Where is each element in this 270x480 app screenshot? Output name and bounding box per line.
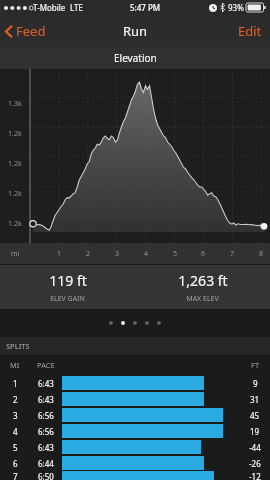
- staticText: 5:47 PM: [130, 2, 161, 13]
- button[interactable]: Edit: [230, 15, 270, 47]
- staticText: 45: [250, 410, 260, 421]
- button[interactable]: 6: [0, 455, 270, 471]
- staticText: 6:43: [38, 378, 54, 389]
- staticText: 5: [13, 442, 18, 453]
- button[interactable]: 2: [0, 391, 270, 407]
- staticText: PACE: [37, 360, 55, 370]
- button[interactable]: 119 ft: [0, 265, 135, 309]
- staticText: 119 ft: [49, 271, 87, 290]
- button[interactable]: Feed: [0, 15, 54, 47]
- staticText: 4: [144, 249, 149, 259]
- staticText: 2: [13, 394, 18, 405]
- staticText: 1: [57, 249, 62, 259]
- button[interactable]: Elevation: [0, 47, 270, 69]
- staticText: 6:56: [38, 410, 54, 421]
- staticText: 1.2k: [8, 129, 22, 139]
- staticText: 6:43: [38, 394, 54, 405]
- staticText: 3: [13, 410, 18, 421]
- staticText: 6:50: [38, 471, 54, 480]
- staticText: 6:56: [38, 426, 54, 437]
- staticText: Edit: [238, 22, 262, 40]
- staticText: 1.2k: [8, 219, 22, 229]
- staticText: 1.2k: [8, 159, 22, 169]
- staticText: 1.3k: [8, 99, 22, 109]
- staticText: Elevation: [114, 51, 157, 65]
- staticText: MAX ELEV: [186, 294, 219, 304]
- button[interactable]: 3: [0, 407, 270, 423]
- button[interactable]: 1,263 ft: [135, 265, 270, 309]
- button[interactable]: Page 3: [133, 321, 137, 325]
- staticText: -12: [249, 471, 261, 480]
- staticText: 6:44: [38, 458, 54, 469]
- staticText: mi: [11, 249, 20, 259]
- staticText: -44: [249, 442, 261, 453]
- button[interactable]: Page 2: [121, 321, 125, 325]
- button[interactable]: 1: [0, 375, 270, 391]
- staticText: 8: [259, 249, 264, 259]
- staticText: ELEV GAIN: [50, 294, 85, 304]
- button[interactable]: 7: [0, 471, 270, 480]
- staticText: 6: [13, 458, 18, 469]
- staticText: 31: [250, 394, 260, 405]
- staticText: 6: [201, 249, 206, 259]
- staticText: 93%: [228, 2, 244, 13]
- staticText: LTE: [70, 2, 83, 13]
- staticText: MI: [10, 360, 20, 370]
- staticText: SPLITS: [6, 341, 30, 351]
- button[interactable]: 5: [0, 439, 270, 455]
- staticText: 7: [230, 249, 235, 259]
- staticText: Feed: [16, 22, 46, 40]
- staticText: 6:43: [38, 442, 54, 453]
- staticText: 5: [173, 249, 178, 259]
- button[interactable]: Page 4: [145, 321, 149, 325]
- staticText: 2: [86, 249, 91, 259]
- staticText: 3: [115, 249, 120, 259]
- staticText: 9: [253, 378, 258, 389]
- button[interactable]: Page 1: [109, 321, 113, 325]
- staticText: 1.2k: [8, 189, 22, 199]
- staticText: 7: [13, 471, 18, 480]
- staticText: -26: [249, 458, 261, 469]
- staticText: T-Mobile: [33, 2, 66, 13]
- staticText: 19: [250, 426, 260, 437]
- button[interactable]: 4: [0, 423, 270, 439]
- staticText: Run: [123, 22, 148, 40]
- staticText: FT: [251, 360, 260, 370]
- staticText: 1,263 ft: [178, 271, 228, 290]
- staticText: 4: [13, 426, 18, 437]
- staticText: 1: [13, 378, 18, 389]
- button[interactable]: Page 5: [157, 321, 161, 325]
